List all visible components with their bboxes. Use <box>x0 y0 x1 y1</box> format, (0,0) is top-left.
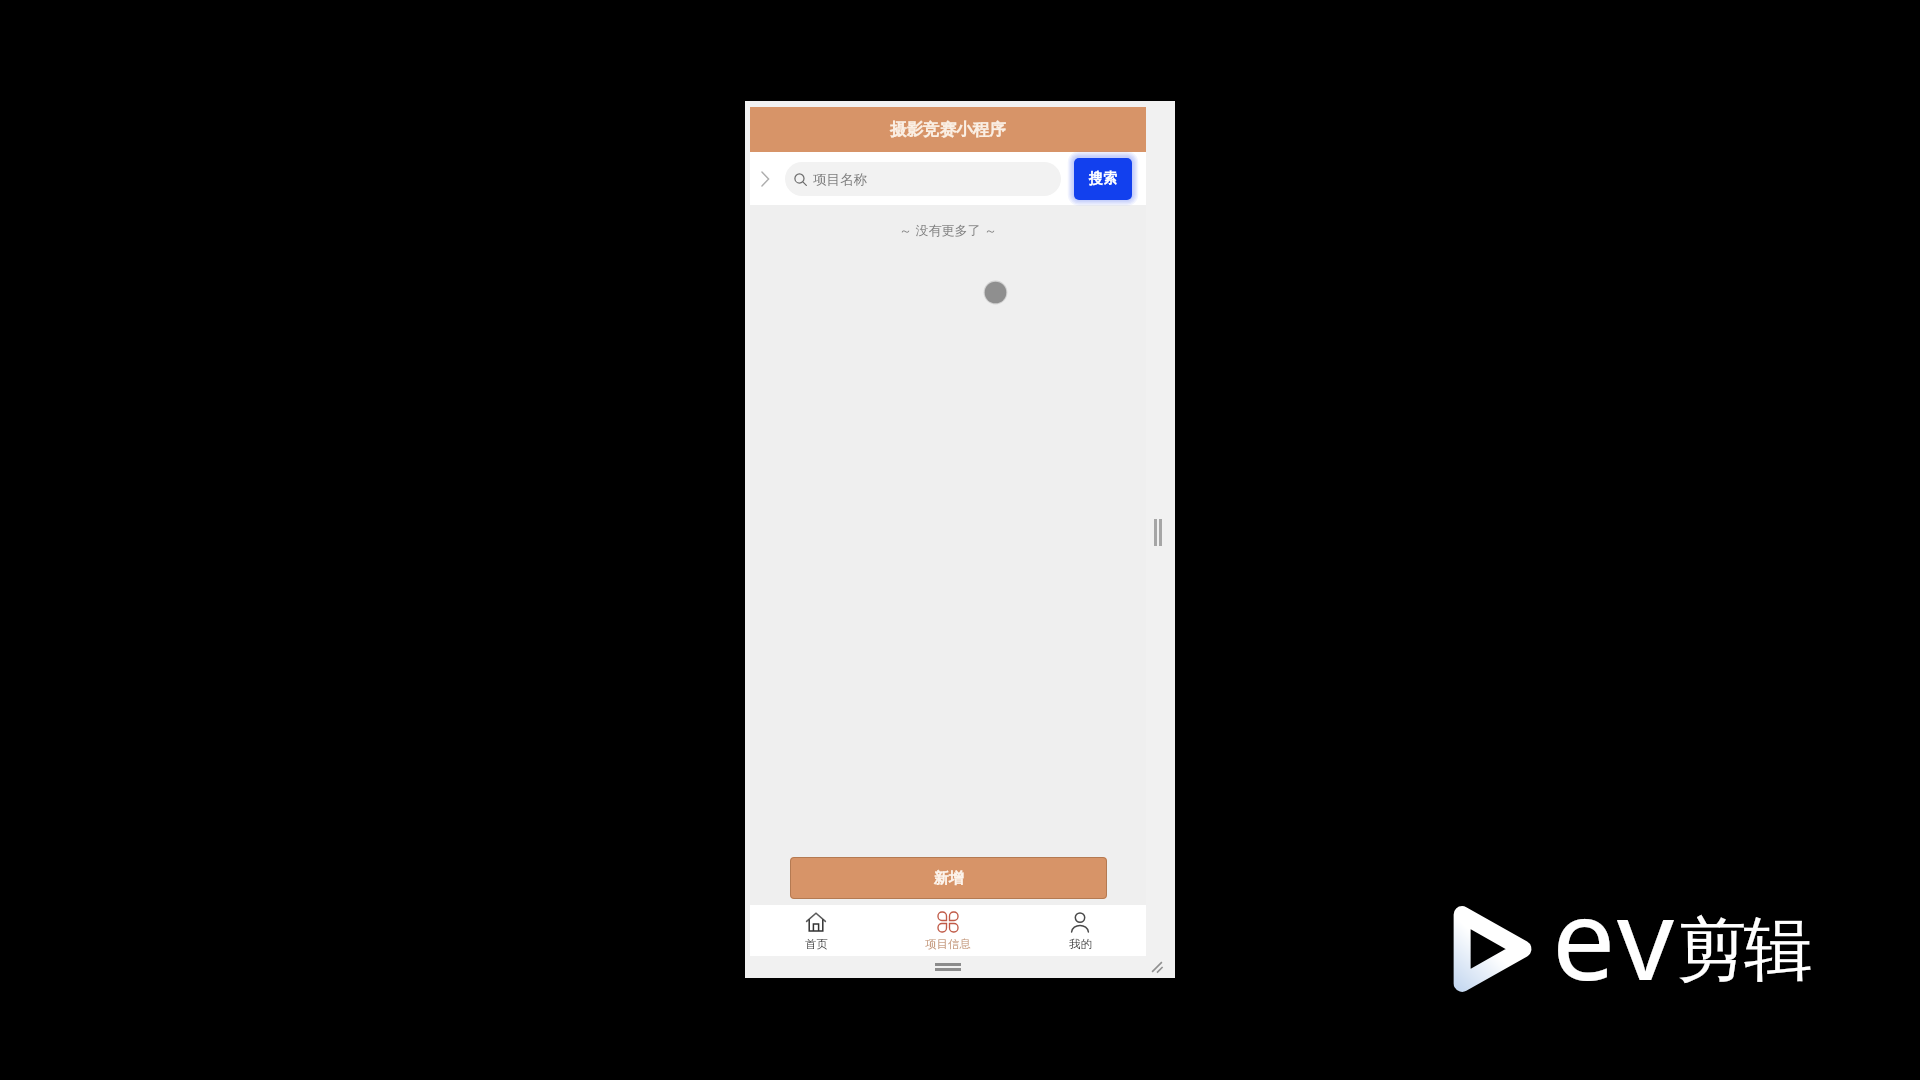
button[interactable]: 首页 <box>750 905 882 957</box>
staticText: ev <box>1552 860 1678 1013</box>
staticText: ～ 没有更多了 ～ <box>750 221 1146 239</box>
button[interactable]: 新增 <box>790 857 1107 899</box>
button[interactable]: Expand <box>753 167 777 191</box>
staticText: 新增 <box>934 869 964 888</box>
button[interactable]: 搜索 <box>1074 158 1132 200</box>
staticText: 我的 <box>1069 937 1092 951</box>
staticText: 项目名称 <box>813 171 867 188</box>
staticText: 搜索 <box>1089 170 1117 188</box>
button[interactable]: 我的 <box>1014 905 1146 957</box>
button[interactable]: 项目名称 <box>785 162 1061 196</box>
staticText: 首页 <box>805 937 828 951</box>
staticText: 剪辑 <box>1679 907 1811 994</box>
staticText: 摄影竞赛小程序 <box>890 119 1006 140</box>
staticText: 项目信息 <box>925 937 971 951</box>
button[interactable]: 项目信息 <box>882 905 1014 957</box>
